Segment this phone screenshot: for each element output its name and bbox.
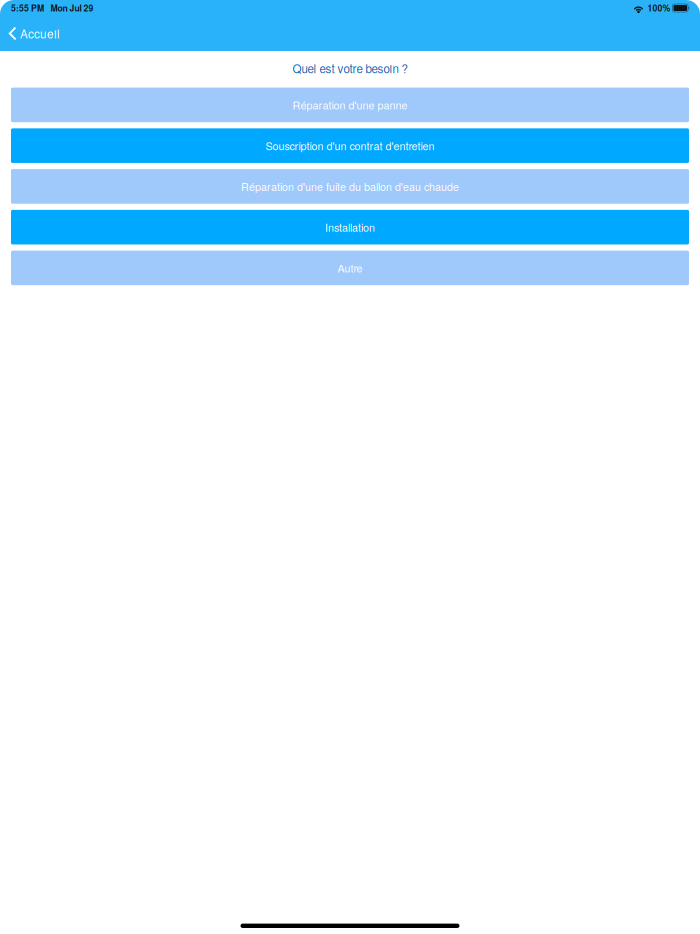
button[interactable]: Réparation d'une fuite du ballon d'eau c… bbox=[11, 169, 689, 204]
staticText: Réparation d'une fuite du ballon d'eau c… bbox=[241, 179, 459, 194]
button[interactable]: Réparation d'une panne bbox=[11, 88, 689, 122]
staticText: Souscription d'un contrat d'entretien bbox=[265, 138, 434, 153]
staticText: Mon Jul 29 bbox=[50, 2, 93, 14]
button[interactable]: Installation bbox=[11, 210, 689, 244]
staticText: 5:55 PM bbox=[11, 2, 44, 14]
staticText: 100% bbox=[647, 2, 670, 14]
staticText: Installation bbox=[325, 219, 375, 235]
button[interactable]: Accueil bbox=[0, 22, 68, 45]
button[interactable]: Autre bbox=[11, 251, 689, 285]
staticText: Autre bbox=[337, 260, 362, 276]
staticText: Accueil bbox=[20, 25, 60, 42]
button[interactable]: Souscription d'un contrat d'entretien bbox=[11, 128, 689, 163]
staticText: Réparation d'une panne bbox=[292, 97, 407, 113]
staticText: Quel est votre besoin ? bbox=[292, 60, 407, 77]
